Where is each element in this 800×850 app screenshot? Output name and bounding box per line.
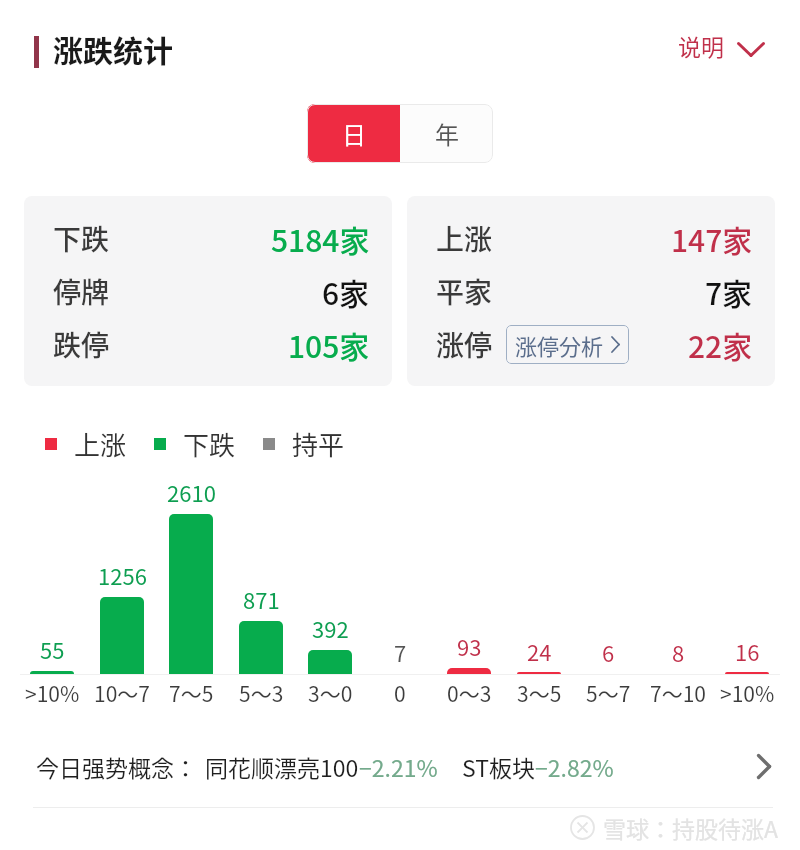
staticText: 7～5 xyxy=(169,678,214,708)
staticText: 年 xyxy=(435,116,459,151)
staticText: 日 xyxy=(342,116,366,151)
staticText: 5184家 xyxy=(271,217,370,260)
staticText: 7～10 xyxy=(650,678,706,708)
staticText: 今日强势概念： xyxy=(36,750,197,783)
button[interactable]: 涨停分析 xyxy=(506,325,629,364)
staticText: 147家 xyxy=(671,217,753,260)
staticText: 24 xyxy=(527,635,552,667)
staticText: 392 xyxy=(312,612,349,644)
staticText: 7家 xyxy=(705,270,753,313)
staticText: 下跌 xyxy=(183,425,236,463)
staticText: 涨停分析 xyxy=(515,329,604,361)
staticText: 平家 xyxy=(436,271,493,312)
staticText: 6 xyxy=(602,636,615,668)
staticText: 上涨 xyxy=(436,218,493,259)
staticText: 5～3 xyxy=(239,678,284,708)
staticText: 跌停 xyxy=(53,324,110,365)
staticText: 3～0 xyxy=(308,678,353,708)
button[interactable]: More xyxy=(740,742,788,790)
staticText: 10～7 xyxy=(94,678,150,708)
staticText: 105家 xyxy=(288,323,370,366)
staticText: 5～7 xyxy=(586,678,631,708)
staticText: 6家 xyxy=(322,270,370,313)
staticText: 8 xyxy=(672,636,685,668)
button[interactable]: 今日强势概念： xyxy=(0,738,800,794)
staticText: 871 xyxy=(243,583,280,615)
staticText: 3～5 xyxy=(517,678,562,708)
staticText: 同花顺漂亮100 xyxy=(205,750,359,783)
staticText: 1256 xyxy=(98,559,147,591)
staticText: 说明 xyxy=(678,29,724,62)
staticText: 0 xyxy=(394,678,406,708)
staticText: 2610 xyxy=(167,476,216,508)
staticText: 上涨 xyxy=(74,425,127,463)
staticText: −2.21% xyxy=(359,750,438,783)
staticText: 雪球：持股待涨A xyxy=(603,811,778,844)
staticText: 停牌 xyxy=(53,271,110,312)
staticText: 22家 xyxy=(688,323,753,366)
staticText: 涨跌统计 xyxy=(53,27,173,70)
staticText: ST板块 xyxy=(462,750,535,783)
staticText: 下跌 xyxy=(53,218,110,259)
button[interactable]: 日 xyxy=(307,104,400,163)
staticText: 55 xyxy=(40,633,65,665)
staticText: >10% xyxy=(25,678,80,708)
staticText: 16 xyxy=(735,635,760,667)
staticText: 涨停 xyxy=(436,324,493,365)
staticText: −2.82% xyxy=(535,750,614,783)
staticText: 7 xyxy=(394,636,407,668)
button[interactable]: 说明 xyxy=(672,27,771,72)
staticText: 0～3 xyxy=(447,678,492,708)
staticText: 93 xyxy=(457,630,482,662)
staticText: 持平 xyxy=(292,425,345,463)
button[interactable]: 年 xyxy=(400,104,493,163)
staticText: >10% xyxy=(720,678,775,708)
